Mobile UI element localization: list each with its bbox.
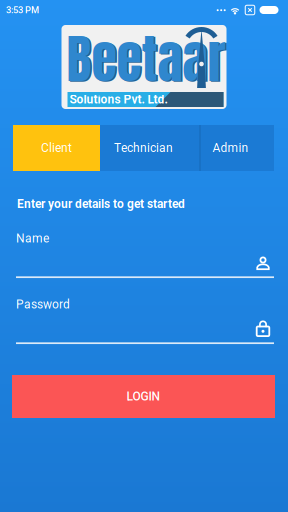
staticText: Beetaar (66, 20, 225, 98)
button[interactable]: Technician (100, 125, 187, 171)
staticText: Client (41, 141, 72, 155)
button[interactable]: Password (16, 299, 274, 345)
staticText: Technician (114, 141, 173, 155)
staticText: Name (16, 231, 49, 246)
staticText: Admin (212, 141, 248, 155)
staticText: Password (16, 297, 70, 312)
button[interactable]: Admin (187, 125, 274, 171)
staticText: Beetaar (68, 21, 227, 99)
staticText: Solutions Pvt. Ltd. (69, 92, 167, 107)
button[interactable]: Name (16, 233, 274, 279)
staticText: Enter your details to get started (17, 197, 185, 211)
button[interactable]: LOGIN (12, 375, 275, 418)
staticText: 3:53 PM (6, 4, 39, 15)
staticText: LOGIN (126, 389, 160, 404)
button[interactable]: Client (13, 125, 100, 171)
